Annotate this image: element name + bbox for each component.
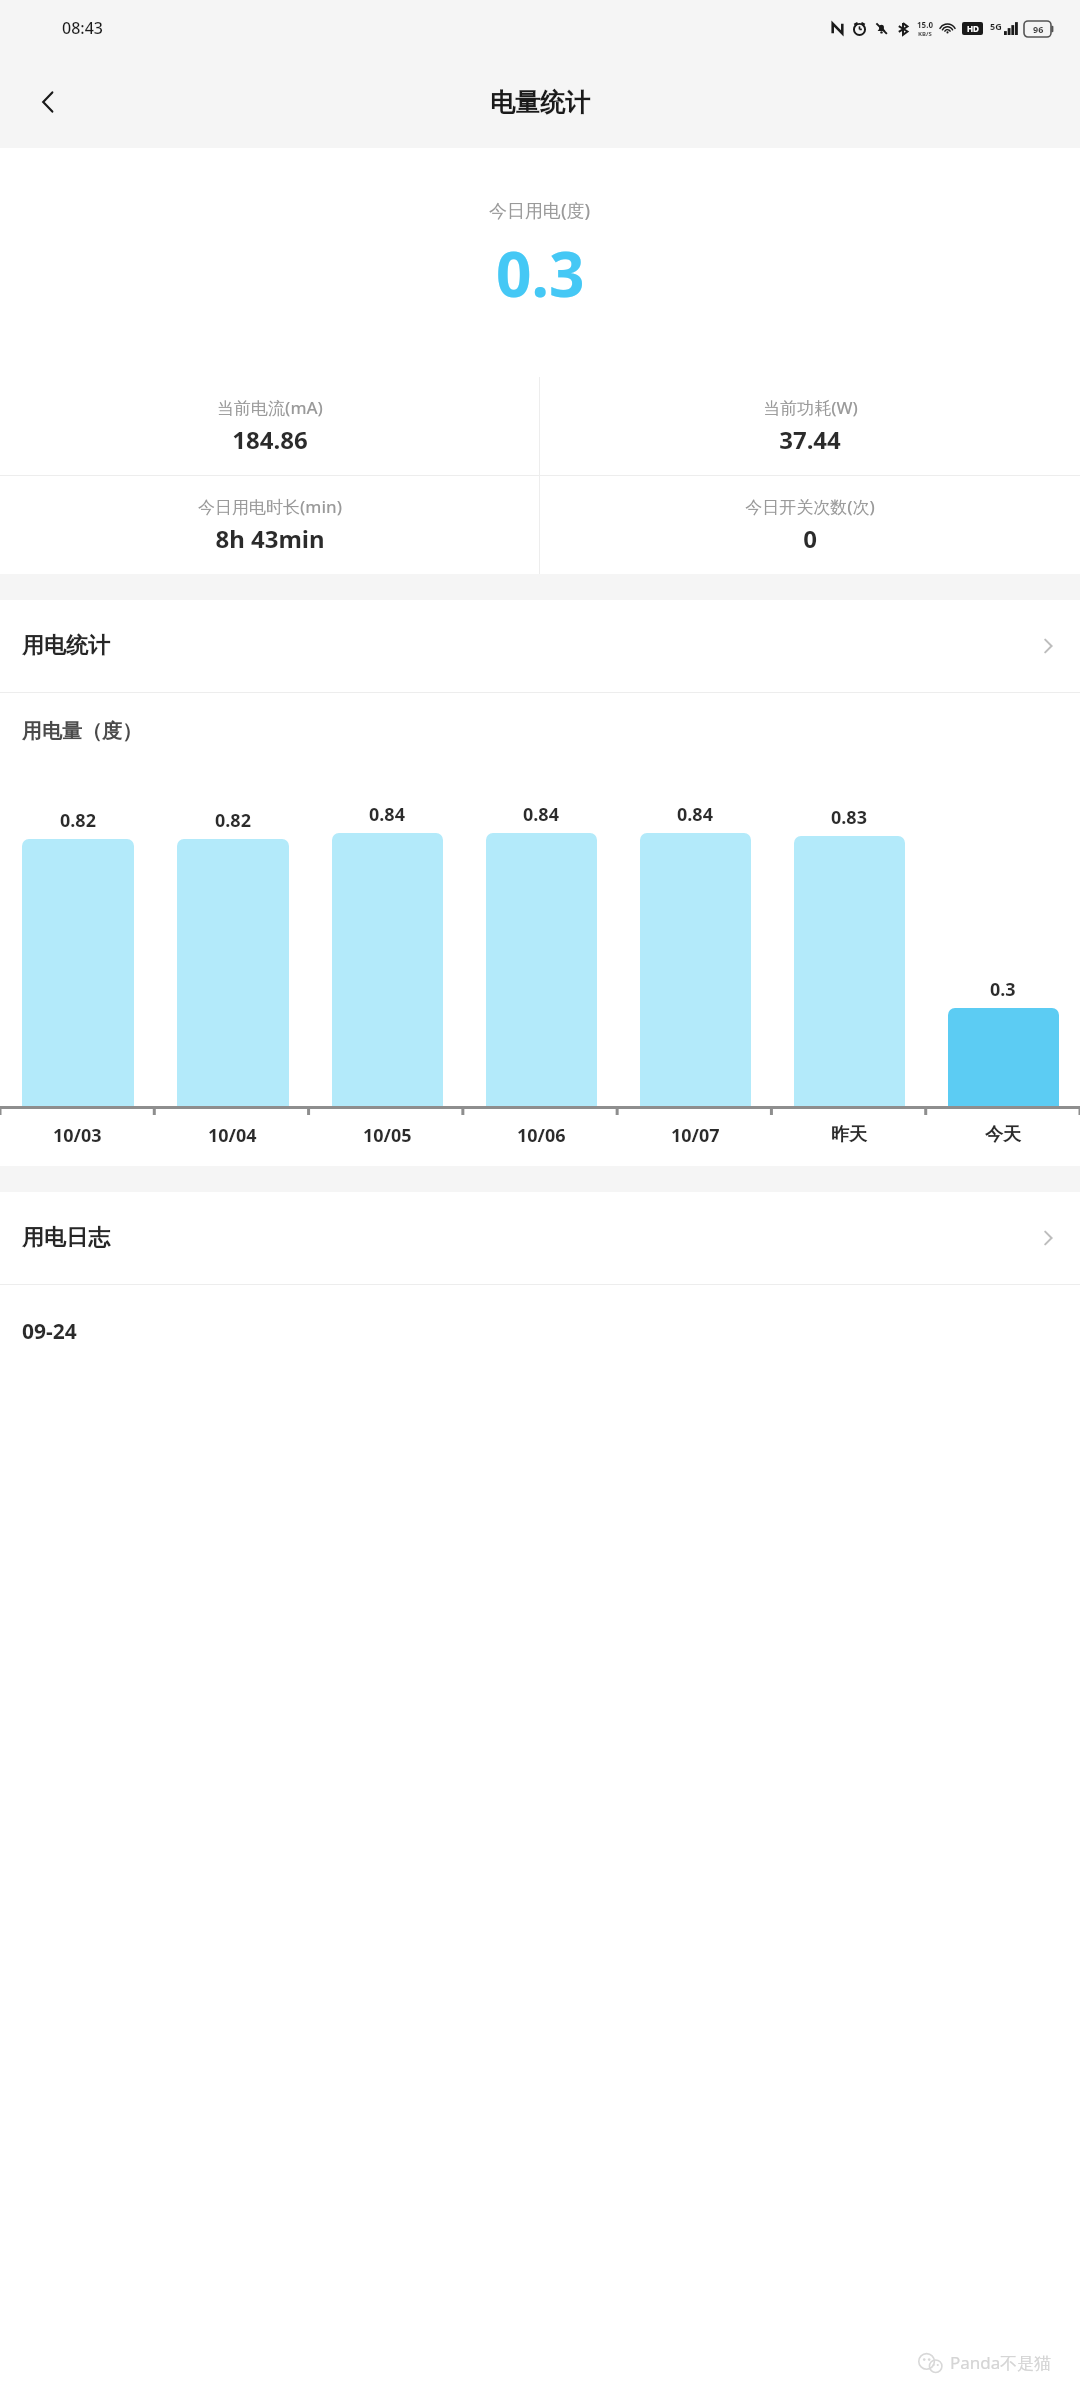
staticText: 96 — [1033, 23, 1044, 35]
staticText: 今日开关次数(次) — [745, 495, 875, 518]
staticText: 5G — [990, 20, 1002, 32]
staticText: 用电量（度） — [22, 719, 142, 744]
staticText: 0.3 — [990, 977, 1016, 1002]
staticText: 09-24 — [22, 1317, 77, 1346]
staticText: 昨天 — [831, 1123, 867, 1146]
button[interactable]: 今日开关次数(次) — [540, 476, 1080, 574]
staticText: 0.83 — [831, 805, 867, 830]
staticText: 37.44 — [779, 423, 841, 456]
button[interactable]: 0.84 — [464, 766, 618, 1106]
button[interactable]: 0.84 — [310, 766, 464, 1106]
staticText: HD — [967, 23, 979, 34]
staticText: 08:43 — [62, 17, 103, 39]
button[interactable]: 当前电流(mA) — [0, 377, 539, 475]
button[interactable]: 0.82 — [155, 766, 310, 1106]
staticText: 8h 43min — [215, 522, 325, 555]
staticText: 今日用电(度) — [489, 198, 591, 223]
staticText: 184.86 — [232, 423, 308, 456]
button[interactable]: 0.82 — [0, 766, 155, 1106]
staticText: 10/03 — [53, 1123, 102, 1148]
staticText: 0.82 — [60, 808, 96, 833]
button[interactable]: 用电统计 — [0, 600, 1080, 692]
staticText: 用电日志 — [22, 1224, 110, 1252]
staticText: 10/06 — [517, 1123, 566, 1148]
staticText: 0.84 — [369, 802, 405, 827]
button[interactable]: Back — [20, 74, 76, 130]
button[interactable]: 0.83 — [772, 766, 926, 1106]
staticText: 0.82 — [215, 808, 251, 833]
staticText: 10/05 — [363, 1123, 412, 1148]
staticText: KB/S — [918, 30, 932, 38]
staticText: 用电统计 — [22, 632, 110, 660]
staticText: 当前功耗(W) — [763, 396, 858, 419]
button[interactable]: 当前功耗(W) — [540, 377, 1080, 475]
staticText: 0.3 — [496, 231, 585, 315]
staticText: 今天 — [985, 1123, 1021, 1146]
staticText: 10/07 — [671, 1123, 720, 1148]
staticText: 15.0 — [917, 19, 933, 30]
staticText: Panda不是猫 — [950, 2351, 1052, 2374]
staticText: 0 — [803, 522, 817, 555]
staticText: 当前电流(mA) — [217, 396, 323, 419]
button[interactable]: 今日用电时长(min) — [0, 476, 539, 574]
button[interactable]: 用电日志 — [0, 1192, 1080, 1284]
staticText: 10/04 — [208, 1123, 257, 1148]
staticText: 0.84 — [523, 802, 559, 827]
staticText: 电量统计 — [490, 87, 590, 118]
button[interactable]: 0.84 — [618, 766, 772, 1106]
staticText: 今日用电时长(min) — [198, 495, 342, 518]
staticText: 0.84 — [677, 802, 713, 827]
button[interactable]: 0.3 — [926, 766, 1080, 1106]
